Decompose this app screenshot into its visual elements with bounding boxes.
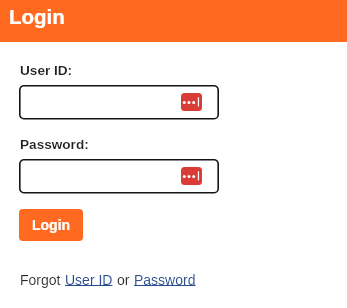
staticText: Forgot (20, 272, 65, 288)
button[interactable]: User ID (65, 272, 113, 288)
button[interactable]: LastPass autofill (19, 159, 219, 195)
staticText: Password: (20, 137, 89, 152)
button[interactable]: Login (19, 209, 83, 241)
staticText: Login (9, 5, 65, 28)
staticText: User ID: (20, 63, 73, 78)
staticText: Login (32, 217, 71, 233)
staticText: or (113, 272, 134, 288)
button[interactable]: LastPass autofill (181, 167, 202, 185)
button[interactable]: LastPass autofill (19, 85, 219, 121)
button[interactable]: LastPass autofill (181, 93, 202, 111)
button[interactable]: Password (134, 272, 196, 288)
